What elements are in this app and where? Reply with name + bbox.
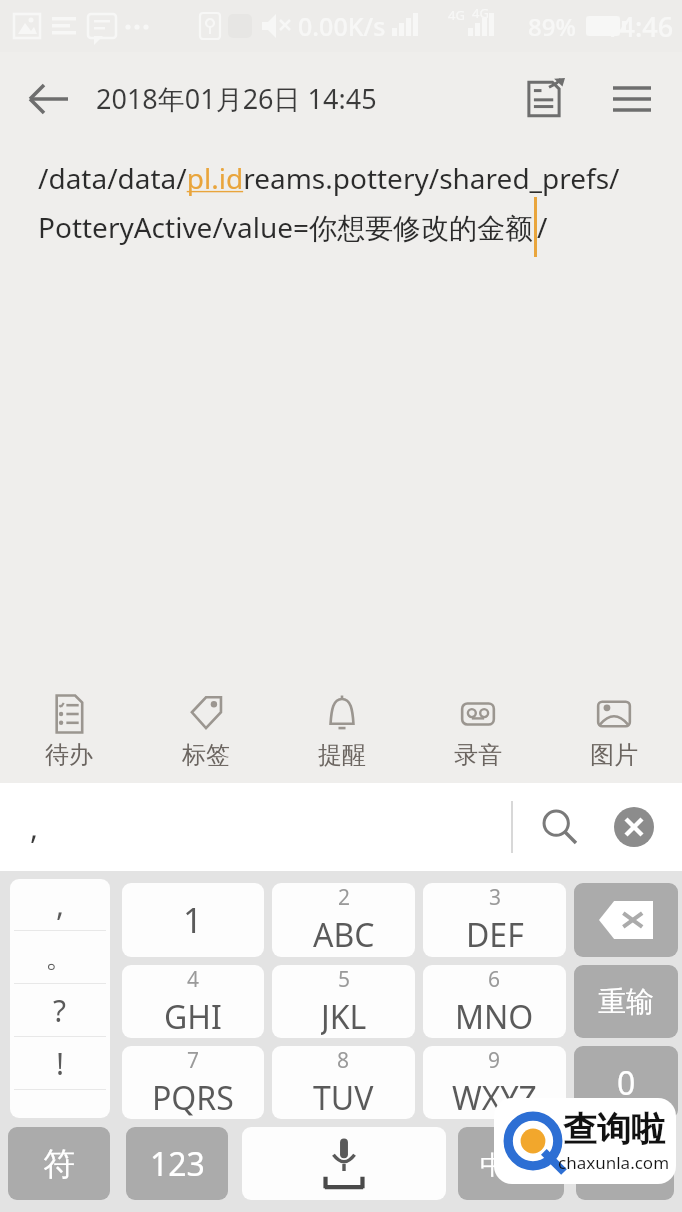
staticText: 3 [489, 883, 502, 912]
staticText: , [56, 884, 65, 925]
button[interactable]: 符 [8, 1127, 110, 1200]
staticText: TUV [313, 1076, 374, 1119]
button[interactable]: 4 [122, 965, 264, 1038]
staticText: 2 [338, 883, 351, 912]
staticText: chaxunla.com [558, 1151, 670, 1174]
staticText: 14:46 [604, 8, 674, 45]
button[interactable]: 提醒 [274, 688, 410, 783]
button[interactable]: 1 [122, 883, 264, 957]
staticText: 0.00K/s [298, 9, 386, 43]
staticText: 0 [617, 1061, 636, 1105]
button[interactable]: 。 [10, 931, 110, 983]
button[interactable]: Close keyboard [604, 797, 664, 857]
staticText: 图片 [590, 740, 638, 770]
button[interactable]: 标签 [137, 688, 274, 783]
button[interactable]: 6 [423, 965, 566, 1038]
button[interactable]: Enter [576, 1127, 674, 1200]
button[interactable]: 123 [126, 1127, 228, 1200]
staticText: 7 [187, 1046, 200, 1075]
staticText: 123 [150, 1142, 205, 1186]
staticText: 4G [472, 4, 489, 22]
staticText: PQRS [152, 1076, 234, 1119]
button[interactable]: Back [22, 73, 74, 125]
button[interactable]: 8 [272, 1046, 415, 1119]
button[interactable]: Menu [604, 71, 660, 127]
button[interactable]: 9 [423, 1046, 566, 1119]
staticText: 重输 [598, 984, 654, 1019]
staticText: 9 [488, 1046, 501, 1075]
button[interactable]: ? [10, 984, 110, 1036]
staticText: 6 [488, 965, 501, 994]
button[interactable]: 0 [574, 1046, 678, 1119]
staticText: ABC [313, 913, 375, 957]
staticText: ! [56, 1043, 65, 1084]
staticText: 5 [338, 965, 351, 994]
staticText: / [537, 208, 548, 246]
button[interactable]: Search [528, 795, 592, 859]
staticText: PotteryActive/value=你想要修改的金额 [38, 208, 534, 246]
staticText: ? [53, 990, 67, 1031]
button[interactable]: 图片 [546, 688, 682, 783]
button[interactable]: , [10, 879, 110, 930]
staticText: 提醒 [318, 740, 366, 770]
button[interactable]: ! [10, 1037, 110, 1089]
button[interactable]: 7 [122, 1046, 264, 1119]
staticText: 中/英 [480, 1146, 542, 1182]
button[interactable]: 重输 [574, 965, 678, 1038]
button[interactable]: 录音 [410, 688, 546, 783]
staticText: 89% [528, 10, 576, 43]
button[interactable]: Backspace [574, 883, 678, 957]
staticText: 4G [448, 6, 465, 24]
staticText: WXYZ [452, 1076, 537, 1119]
staticText: 8 [337, 1046, 350, 1075]
button[interactable]: Share note [514, 69, 574, 129]
staticText: 待办 [45, 740, 93, 770]
staticText: 1 [183, 897, 203, 943]
button[interactable]: Switch Chinese English [458, 1127, 564, 1200]
button[interactable]: Voice input and space [242, 1127, 446, 1200]
button[interactable]: 3 [423, 883, 566, 957]
staticText: 查询啦 [563, 1108, 665, 1151]
staticText: 录音 [454, 740, 502, 770]
staticText: MNO [455, 995, 534, 1038]
staticText: 4 [187, 965, 200, 994]
staticText: JKL [321, 995, 367, 1038]
staticText: 2018年01月26日 14:45 [96, 80, 377, 117]
staticText: GHI [164, 995, 222, 1038]
button[interactable]: 2 [272, 883, 415, 957]
staticText: , [30, 807, 39, 848]
button[interactable]: 待办 [0, 688, 137, 783]
staticText: 标签 [182, 740, 230, 770]
staticText: /data/data/pl.idreams.pottery/shared_pre… [38, 159, 620, 197]
staticText: DEF [466, 913, 524, 957]
staticText: 。 [45, 938, 75, 976]
button[interactable]: 5 [272, 965, 415, 1038]
staticText: 符 [43, 1144, 75, 1184]
